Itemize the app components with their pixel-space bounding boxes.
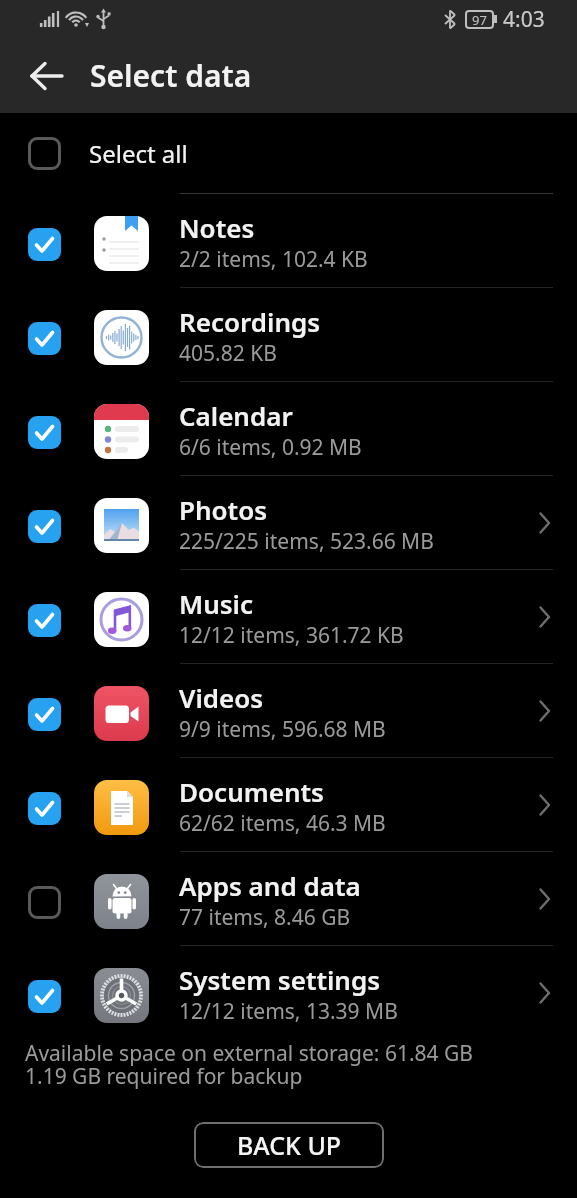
staticText: Documents (179, 774, 324, 809)
button[interactable]: Recordings (0, 288, 577, 381)
staticText: 12/12 items, 361.72 KB (179, 621, 404, 650)
button[interactable]: Calendar (0, 382, 577, 475)
staticText: Music (179, 586, 253, 621)
staticText: Apps and data (179, 868, 361, 903)
staticText: 62/62 items, 46.3 MB (179, 809, 386, 838)
staticText: 4:03 (503, 5, 545, 34)
button[interactable]: BACK UP (194, 1122, 384, 1168)
staticText: 12/12 items, 13.39 MB (179, 997, 398, 1026)
staticText: Recordings (179, 304, 321, 339)
staticText: Notes (179, 210, 255, 245)
button[interactable]: Videos (0, 664, 577, 757)
staticText: 2/2 items, 102.4 KB (179, 245, 368, 274)
staticText: 405.82 KB (179, 339, 277, 368)
button[interactable]: Apps and data (0, 852, 577, 945)
staticText: Select all (89, 137, 188, 170)
button[interactable]: Music (0, 570, 577, 663)
button[interactable]: Documents (0, 758, 577, 851)
staticText: 9/9 items, 596.68 MB (179, 715, 386, 744)
button[interactable] (30, 62, 64, 90)
button[interactable]: Notes (0, 194, 577, 287)
staticText: 77 items, 8.46 GB (179, 903, 351, 932)
button[interactable]: Select all (0, 113, 577, 193)
staticText: Videos (179, 680, 264, 715)
staticText: Select data (90, 55, 252, 96)
staticText: 97 (472, 11, 487, 29)
button[interactable]: System settings (0, 946, 577, 1039)
staticText: Calendar (179, 398, 293, 433)
staticText: 6/6 items, 0.92 MB (179, 433, 362, 462)
button[interactable]: Photos (0, 476, 577, 569)
staticText: BACK UP (237, 1128, 342, 1162)
staticText: 225/225 items, 523.66 MB (179, 527, 434, 556)
staticText: System settings (179, 962, 381, 997)
staticText: Available space on external storage: 61.… (25, 1039, 473, 1090)
staticText: Photos (179, 492, 268, 527)
